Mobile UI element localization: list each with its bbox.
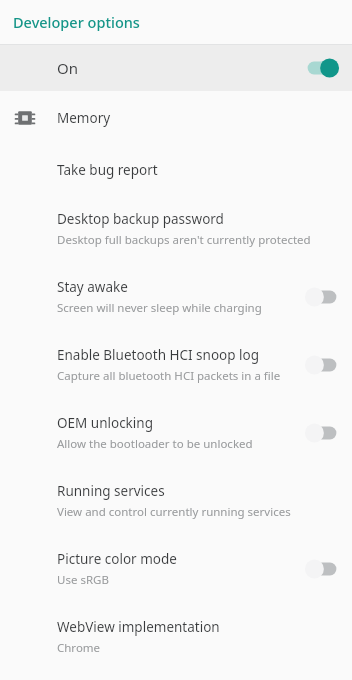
staticText: Capture all bluetooth HCI packets in a f… xyxy=(57,368,281,384)
button[interactable]: Off xyxy=(304,558,340,580)
button[interactable]: WebView implementation xyxy=(0,603,352,671)
staticText: Allow the bootloader to be unlocked xyxy=(57,436,253,452)
staticText: Running services xyxy=(57,482,165,500)
staticText: Chrome xyxy=(57,640,101,656)
button[interactable]: Take bug report xyxy=(0,145,352,195)
button[interactable]: OEM unlocking xyxy=(0,399,352,467)
other: Memory xyxy=(14,107,36,129)
staticText: WebView implementation xyxy=(57,618,220,636)
staticText: View and control currently running servi… xyxy=(57,504,291,520)
staticText: OEM unlocking xyxy=(57,414,153,432)
staticText: Desktop backup password xyxy=(57,210,224,228)
button[interactable]: Stay awake xyxy=(0,263,352,331)
staticText: Developer options xyxy=(13,12,140,32)
button[interactable]: Off xyxy=(304,422,340,444)
button[interactable]: Memory xyxy=(0,91,352,145)
button[interactable]: Running services xyxy=(0,467,352,535)
button[interactable]: Off xyxy=(304,354,340,376)
staticText: Stay awake xyxy=(57,278,128,296)
staticText: Screen will never sleep while charging xyxy=(57,300,262,316)
button[interactable]: Off xyxy=(304,286,340,308)
staticText: Use sRGB xyxy=(57,572,109,588)
button[interactable]: Enable Bluetooth HCI snoop log xyxy=(0,331,352,399)
staticText: Enable Bluetooth HCI snoop log xyxy=(57,346,260,364)
staticText: Picture color mode xyxy=(57,550,177,568)
button[interactable]: Picture color mode xyxy=(0,535,352,603)
staticText: Desktop full backups aren't currently pr… xyxy=(57,232,311,248)
staticText: On xyxy=(57,58,78,78)
button[interactable]: On xyxy=(0,45,352,91)
staticText: Take bug report xyxy=(57,161,158,179)
staticText: Memory xyxy=(57,109,111,127)
button[interactable]: Desktop backup password xyxy=(0,195,352,263)
button[interactable]: On xyxy=(304,57,340,79)
